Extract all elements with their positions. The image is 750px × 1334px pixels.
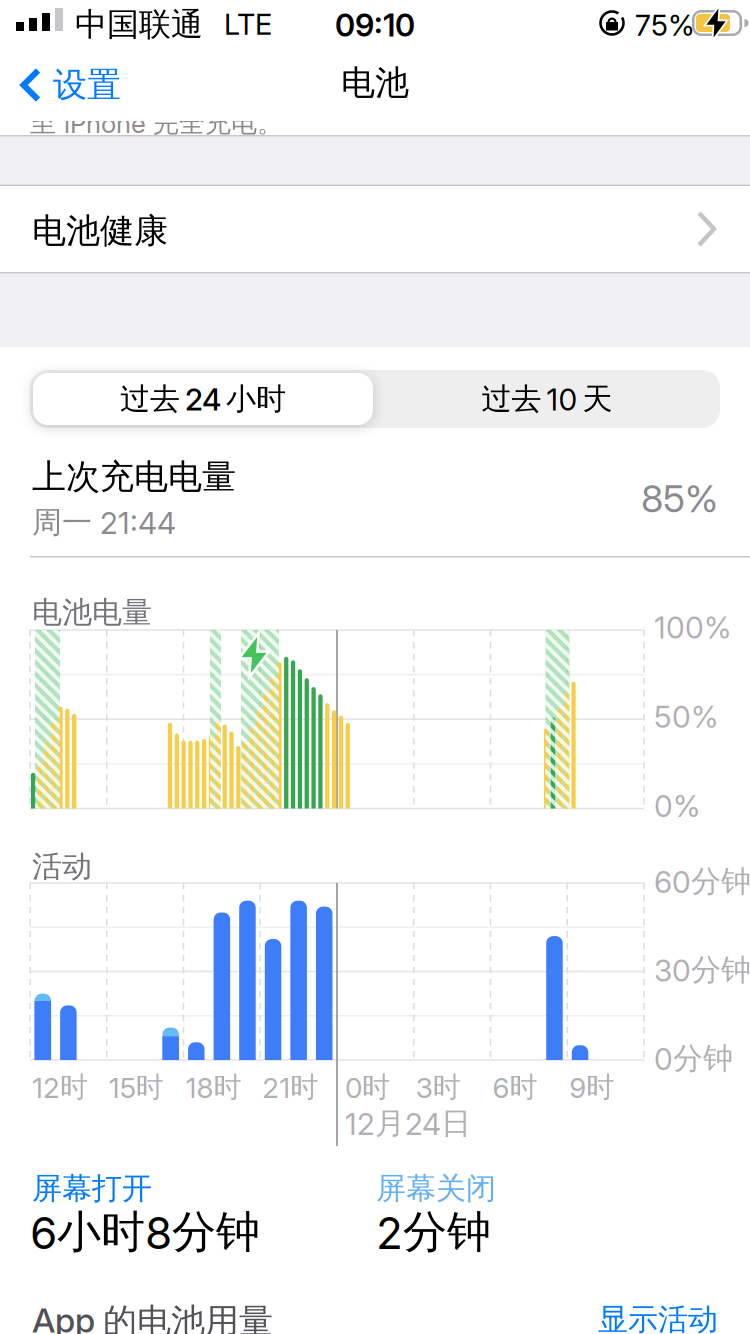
staticText: 9时: [569, 1070, 614, 1104]
staticText: 设置: [53, 64, 121, 106]
staticText: 中国联通: [75, 5, 203, 44]
staticText: 30分钟: [654, 951, 750, 988]
staticText: 0%: [654, 788, 700, 824]
staticText: 2分钟: [376, 1205, 491, 1259]
staticText: 过去 10 天: [481, 381, 612, 417]
staticText: 09:10: [335, 7, 415, 44]
staticText: 0时: [345, 1070, 390, 1104]
staticText: App 的电池用量: [32, 1300, 273, 1334]
staticText: 电池: [341, 62, 409, 104]
staticText: 显示活动: [598, 1301, 718, 1334]
staticText: 50%: [654, 699, 718, 735]
staticText: 85%: [641, 476, 718, 521]
staticText: 12时: [32, 1070, 88, 1104]
button[interactable]: 电池健康: [0, 186, 750, 272]
button[interactable]: 显示活动: [598, 1301, 718, 1334]
staticText: 电池电量: [32, 594, 152, 631]
staticText: 100%: [654, 610, 731, 645]
staticText: 18时: [185, 1070, 241, 1104]
staticText: 12月24日: [345, 1105, 471, 1142]
staticText: 周一 21:44: [32, 504, 176, 541]
staticText: 15时: [109, 1070, 164, 1104]
staticText: 3时: [416, 1070, 461, 1104]
button[interactable]: 过去 10 天: [377, 373, 717, 425]
staticText: 屏幕关闭: [376, 1170, 496, 1207]
staticText: 过去 24 小时: [120, 381, 286, 417]
staticText: 屏幕打开: [32, 1170, 152, 1207]
staticText: 6时: [492, 1070, 537, 1104]
staticText: 60分钟: [654, 863, 750, 900]
button[interactable]: 过去 24 小时: [33, 373, 373, 425]
staticText: 上次充电电量: [32, 456, 236, 498]
staticText: 21时: [262, 1070, 318, 1104]
staticText: 75%: [635, 8, 695, 42]
staticText: 至 iPhone 完全充电。: [30, 107, 283, 139]
staticText: 电池健康: [32, 210, 168, 252]
staticText: 活动: [32, 848, 92, 885]
staticText: LTE: [224, 7, 272, 41]
staticText: 0分钟: [654, 1040, 733, 1077]
staticText: 6小时8分钟: [30, 1205, 260, 1259]
button[interactable]: 设置: [20, 61, 121, 109]
